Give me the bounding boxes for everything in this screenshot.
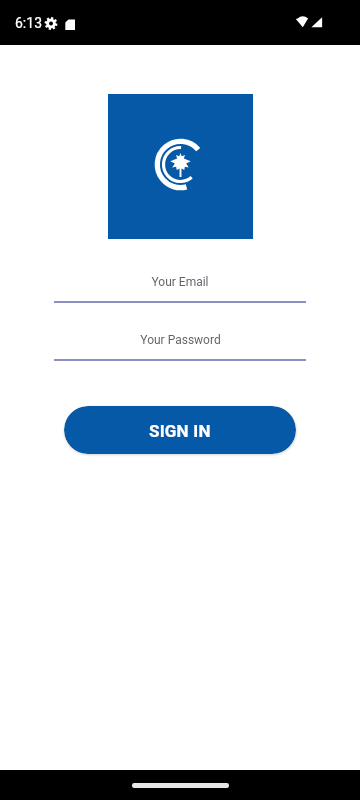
staticText: Your Email	[151, 275, 209, 289]
button[interactable]: Your Password	[54, 333, 306, 361]
button[interactable]: Your Email	[54, 275, 306, 303]
staticText: SIGN IN	[149, 421, 211, 441]
staticText: 6:13	[15, 15, 42, 31]
button[interactable]: SIGN IN	[64, 406, 296, 454]
staticText: Your Password	[140, 333, 221, 347]
